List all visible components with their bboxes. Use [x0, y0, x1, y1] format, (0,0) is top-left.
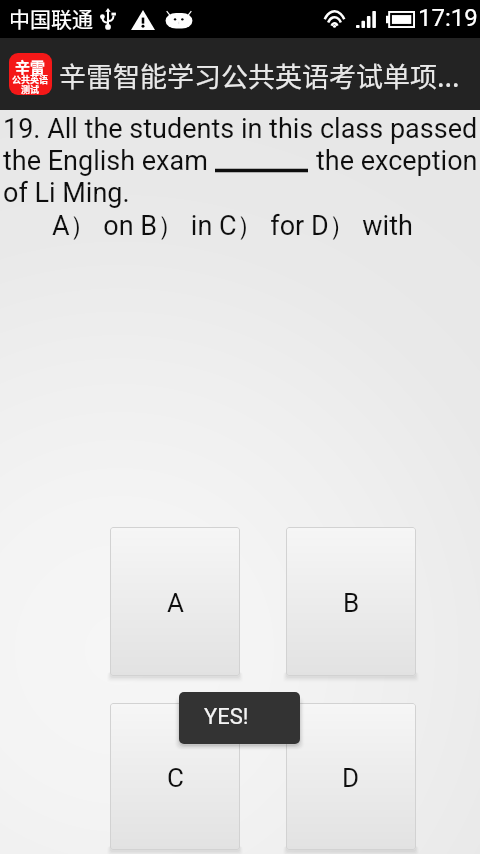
staticText: of Li Ming. — [3, 177, 130, 209]
staticText: the exception — [316, 145, 478, 177]
button[interactable]: D — [286, 703, 416, 850]
staticText: B — [343, 588, 360, 618]
staticText: 辛雷 — [15, 56, 46, 78]
staticText: the English exam — [3, 145, 208, 177]
staticText: C — [167, 763, 184, 793]
button[interactable]: B — [286, 527, 416, 676]
staticText: 19. All the students in this class passe… — [3, 113, 478, 145]
staticText: YES! — [204, 704, 249, 730]
staticText: 17:19 — [418, 4, 478, 32]
staticText: A） on B） in C） for D） with — [52, 209, 413, 243]
button[interactable]: A — [110, 527, 240, 676]
other: App icon, up — [9, 53, 52, 95]
staticText: 辛雷智能学习公共英语考试单项... — [59, 56, 460, 95]
button[interactable]: App icon, up — [0, 38, 480, 110]
staticText: 公共英语 — [12, 73, 49, 86]
staticText: A — [167, 588, 184, 618]
staticText: D — [342, 763, 360, 793]
staticText: 中国联通 — [9, 3, 93, 33]
staticText: 测试 — [21, 83, 40, 95]
button[interactable]: C — [110, 703, 240, 850]
